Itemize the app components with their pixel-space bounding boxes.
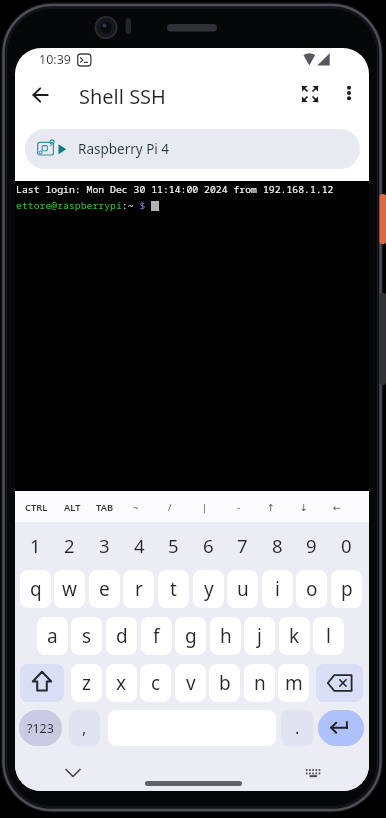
staticText: o xyxy=(306,576,318,602)
button[interactable]: g xyxy=(175,617,206,655)
button[interactable]: 4 xyxy=(122,532,156,559)
button[interactable]: 2 xyxy=(52,532,86,559)
button[interactable]: b xyxy=(209,664,240,702)
button[interactable]: s xyxy=(71,617,102,655)
button[interactable]: 9 xyxy=(294,532,328,559)
button[interactable]: 7 xyxy=(225,532,259,559)
button[interactable]: k xyxy=(279,617,310,655)
button[interactable] xyxy=(335,79,363,107)
button[interactable] xyxy=(316,664,363,702)
button[interactable]: f xyxy=(141,617,172,655)
button[interactable] xyxy=(61,761,85,785)
staticText: Last login: Mon Dec 30 11:14:00 2024 fro… xyxy=(16,183,334,196)
staticText: ↓ xyxy=(300,502,308,513)
button[interactable]: / xyxy=(156,491,184,523)
button[interactable] xyxy=(318,710,364,746)
button[interactable]: . xyxy=(281,710,313,746)
staticText: . xyxy=(295,717,300,739)
button[interactable]: l xyxy=(313,617,344,655)
button[interactable]: q xyxy=(20,570,51,608)
staticText: 7 xyxy=(237,533,248,558)
staticText: ALT xyxy=(64,501,81,514)
button[interactable]: p xyxy=(331,570,362,608)
button[interactable]: ← xyxy=(323,491,351,523)
staticText: t xyxy=(170,576,177,602)
button[interactable]: 0 xyxy=(329,532,363,559)
button[interactable]: ALT xyxy=(56,491,88,523)
button[interactable]: j xyxy=(244,617,275,655)
staticText: ettore@raspberrypi:~ $ xyxy=(16,199,146,212)
staticText: s xyxy=(82,623,92,649)
staticText: CTRL xyxy=(25,501,48,514)
button[interactable]: Raspberry Pi 4 xyxy=(25,129,360,169)
button[interactable]: ↓ xyxy=(290,491,318,523)
button[interactable]: e xyxy=(89,570,120,608)
button[interactable]: m xyxy=(278,664,309,702)
staticText: x xyxy=(116,670,127,696)
button[interactable]: t xyxy=(158,570,189,608)
staticText: i xyxy=(275,576,280,602)
button[interactable] xyxy=(300,761,326,787)
button[interactable]: 3 xyxy=(87,532,121,559)
button[interactable]: - xyxy=(225,491,253,523)
button[interactable]: z xyxy=(71,664,102,702)
staticText: k xyxy=(289,623,300,649)
staticText: w xyxy=(62,576,77,602)
staticText: TAB xyxy=(96,501,114,514)
staticText: g xyxy=(185,623,197,649)
button[interactable]: v xyxy=(175,664,206,702)
staticText: f xyxy=(153,623,160,649)
button[interactable]: ~ xyxy=(122,491,150,523)
button[interactable]: w xyxy=(54,570,85,608)
button[interactable] xyxy=(27,81,55,109)
button[interactable]: a xyxy=(37,617,68,655)
staticText: 6 xyxy=(203,533,214,558)
button[interactable]: ?123 xyxy=(19,710,62,746)
staticText: ?123 xyxy=(27,720,54,737)
staticText: - xyxy=(237,501,241,514)
button[interactable]: u xyxy=(227,570,258,608)
staticText: 2 xyxy=(64,533,75,558)
button[interactable]: h xyxy=(210,617,241,655)
staticText: q xyxy=(30,576,42,602)
button[interactable]: 8 xyxy=(260,532,294,559)
button[interactable]: y xyxy=(193,570,224,608)
button[interactable]: d xyxy=(106,617,137,655)
button[interactable]: 5 xyxy=(156,532,190,559)
button[interactable]: o xyxy=(296,570,327,608)
button[interactable]: c xyxy=(140,664,171,702)
staticText: e xyxy=(99,576,110,602)
staticText: p xyxy=(341,576,353,602)
button[interactable] xyxy=(296,80,324,108)
button[interactable]: x xyxy=(106,664,137,702)
button[interactable]: CTRL xyxy=(20,491,52,523)
staticText: m xyxy=(285,670,303,696)
staticText: 1 xyxy=(30,533,41,558)
staticText: 8 xyxy=(272,533,283,558)
staticText: a xyxy=(47,623,58,649)
staticText: 10:39 xyxy=(39,51,71,67)
staticText: n xyxy=(254,670,266,696)
staticText: ↑ xyxy=(267,502,275,513)
button[interactable]: n xyxy=(244,664,275,702)
staticText: d xyxy=(116,623,128,649)
button[interactable]: , xyxy=(69,710,100,746)
staticText: 4 xyxy=(134,533,145,558)
button[interactable]: i xyxy=(262,570,293,608)
staticText: v xyxy=(186,670,196,696)
button[interactable]: ↑ xyxy=(257,491,285,523)
button[interactable]: | xyxy=(191,491,219,523)
button[interactable]: 6 xyxy=(191,532,225,559)
button[interactable]: r xyxy=(123,570,154,608)
staticText: y xyxy=(204,576,214,602)
staticText: c xyxy=(151,670,161,696)
staticText: Raspberry Pi 4 xyxy=(78,140,170,158)
staticText: , xyxy=(82,717,87,739)
button[interactable] xyxy=(20,664,64,702)
staticText: 9 xyxy=(306,533,317,558)
button[interactable]: 1 xyxy=(18,532,52,559)
staticText: b xyxy=(219,670,231,696)
button[interactable]: TAB xyxy=(89,491,121,523)
staticText: z xyxy=(82,670,91,696)
